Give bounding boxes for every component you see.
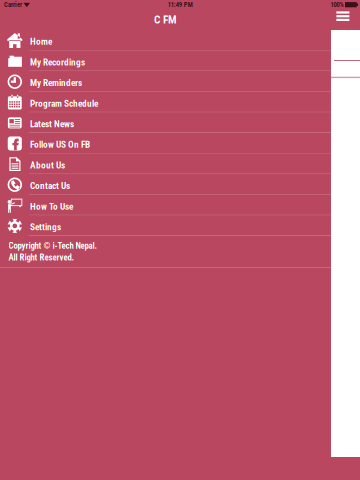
button[interactable]: Home [0,30,331,51]
staticText: My Recordings [30,57,85,68]
button[interactable]: About Us [0,154,331,174]
button[interactable]: Program Schedule [0,92,331,112]
staticText: About Us [30,160,65,171]
staticText: Home [30,36,52,47]
staticText: Contact Us [30,180,70,191]
button[interactable]: Follow US On FB [0,133,331,154]
staticText: My Reminders [30,77,82,88]
button[interactable]: Latest News [0,112,331,133]
staticText: All Right Reserved. [8,252,74,263]
staticText: Follow US On FB [30,139,90,150]
staticText: Settings [30,222,61,232]
staticText: Program Schedule [30,98,98,109]
staticText: 100% [330,1,343,9]
staticText: 11:49 PM [168,1,193,9]
button[interactable]: Menu [331,0,353,25]
button[interactable]: How To Use [0,195,331,215]
staticText: Carrier [4,1,22,9]
button[interactable]: Settings [0,215,331,236]
staticText: Copyright © i-Tech Nepal. [8,241,97,251]
staticText: How To Use [30,201,73,212]
staticText: C FM [154,13,177,26]
button[interactable]: My Recordings [0,51,331,71]
button[interactable]: Contact Us [0,174,331,195]
button[interactable]: My Reminders [0,71,331,92]
staticText: Latest News [30,119,74,129]
